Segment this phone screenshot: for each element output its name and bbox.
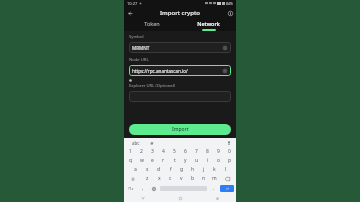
- button[interactable]: v: [176, 174, 187, 183]
- button[interactable]: Enter: [220, 185, 234, 192]
- staticText: abc: [132, 140, 140, 146]
- staticText: Symbol: [129, 34, 144, 40]
- button[interactable]: ?1२: [125, 184, 137, 193]
- button[interactable]: 3: [147, 147, 158, 156]
- button[interactable]: c: [165, 174, 176, 183]
- staticText: .: [213, 185, 215, 192]
- staticText: y: [184, 157, 187, 164]
- button[interactable]: r: [158, 156, 169, 165]
- button[interactable]: u: [191, 156, 202, 165]
- button[interactable]: .: [208, 184, 219, 193]
- staticText: u: [195, 157, 199, 164]
- button[interactable]: 6: [180, 147, 191, 156]
- button[interactable]: p: [224, 156, 235, 165]
- button[interactable]: Import: [129, 124, 231, 135]
- staticText: t: [174, 157, 176, 164]
- staticText: z: [146, 175, 149, 182]
- button[interactable]: f: [165, 165, 176, 174]
- staticText: a: [134, 166, 137, 173]
- button[interactable]: Network: [180, 19, 236, 31]
- button[interactable]: i: [202, 156, 213, 165]
- staticText: 1: [129, 148, 132, 155]
- button[interactable]: Home: [162, 194, 199, 202]
- staticText: r: [162, 157, 165, 164]
- button[interactable]: y: [180, 156, 191, 165]
- staticText: 6: [184, 148, 187, 155]
- staticText: Import: [172, 126, 189, 133]
- staticText: Token: [144, 20, 160, 27]
- staticText: 2: [140, 148, 143, 155]
- staticText: k: [213, 166, 216, 173]
- button[interactable]: j: [198, 165, 209, 174]
- staticText: MRMNT: [132, 45, 222, 51]
- staticText: ,: [142, 185, 144, 192]
- button[interactable]: Back: [124, 7, 136, 19]
- button[interactable]: अ: [144, 140, 160, 146]
- button[interactable]: Info: [224, 7, 236, 19]
- button[interactable]: d: [153, 165, 165, 174]
- staticText: Import crypto: [160, 9, 200, 17]
- staticText: w: [140, 157, 144, 164]
- button[interactable]: Backspace: [220, 174, 235, 183]
- staticText: f: [170, 166, 172, 173]
- button[interactable]: s: [141, 165, 153, 174]
- staticText: e: [151, 157, 154, 164]
- button[interactable]: z: [141, 174, 153, 183]
- button[interactable]: MRMNT: [129, 42, 231, 53]
- button[interactable]: l: [220, 165, 231, 174]
- button[interactable]: Token: [124, 19, 180, 31]
- button[interactable]: [129, 91, 231, 102]
- button[interactable]: Change language: [148, 184, 159, 193]
- button[interactable]: 1: [125, 147, 136, 156]
- button[interactable]: Clear: [222, 68, 228, 74]
- button[interactable]: a: [129, 165, 141, 174]
- staticText: q: [129, 157, 133, 164]
- button[interactable]: 8: [202, 147, 213, 156]
- button[interactable]: 2: [136, 147, 147, 156]
- staticText: 5: [173, 148, 176, 155]
- button[interactable]: 0: [224, 147, 235, 156]
- button[interactable]: Clear: [222, 45, 228, 51]
- staticText: 0: [228, 148, 231, 155]
- button[interactable]: Recent apps: [199, 194, 236, 202]
- button[interactable]: Shift: [125, 174, 141, 183]
- staticText: h: [191, 166, 195, 173]
- button[interactable]: o: [213, 156, 224, 165]
- staticText: n: [202, 175, 206, 182]
- button[interactable]: q: [125, 156, 136, 165]
- button[interactable]: 9: [213, 147, 224, 156]
- button[interactable]: x: [153, 174, 165, 183]
- button[interactable]: g: [176, 165, 187, 174]
- staticText: 3: [151, 148, 154, 155]
- staticText: i: [207, 157, 209, 164]
- button[interactable]: Emoji: [137, 184, 148, 193]
- staticText: d: [157, 166, 161, 173]
- staticText: अ: [150, 140, 154, 146]
- staticText: 9: [217, 148, 220, 155]
- button[interactable]: 5: [169, 147, 180, 156]
- button[interactable]: 7: [191, 147, 202, 156]
- button[interactable]: abc: [128, 140, 144, 146]
- button[interactable]: h: [187, 165, 198, 174]
- staticText: 10:27: [127, 1, 138, 6]
- staticText: s: [146, 166, 149, 173]
- staticText: l: [225, 166, 227, 173]
- staticText: c: [169, 175, 172, 182]
- button[interactable]: e: [147, 156, 158, 165]
- button[interactable]: k: [209, 165, 220, 174]
- button[interactable]: Voice input: [225, 139, 232, 146]
- button[interactable]: n: [198, 174, 209, 183]
- button[interactable]: 4: [158, 147, 169, 156]
- staticText: o: [217, 157, 221, 164]
- button[interactable]: m: [209, 174, 220, 183]
- staticText: Node URL: [129, 57, 149, 63]
- staticText: x: [158, 175, 161, 182]
- button[interactable]: w: [136, 156, 147, 165]
- button[interactable]: b: [187, 174, 198, 183]
- staticText: v: [180, 175, 183, 182]
- button[interactable]: t: [169, 156, 180, 165]
- button[interactable]: https://rpc.anantascan.io/: [129, 65, 231, 76]
- button[interactable]: Back: [124, 194, 162, 202]
- staticText: j: [203, 166, 205, 173]
